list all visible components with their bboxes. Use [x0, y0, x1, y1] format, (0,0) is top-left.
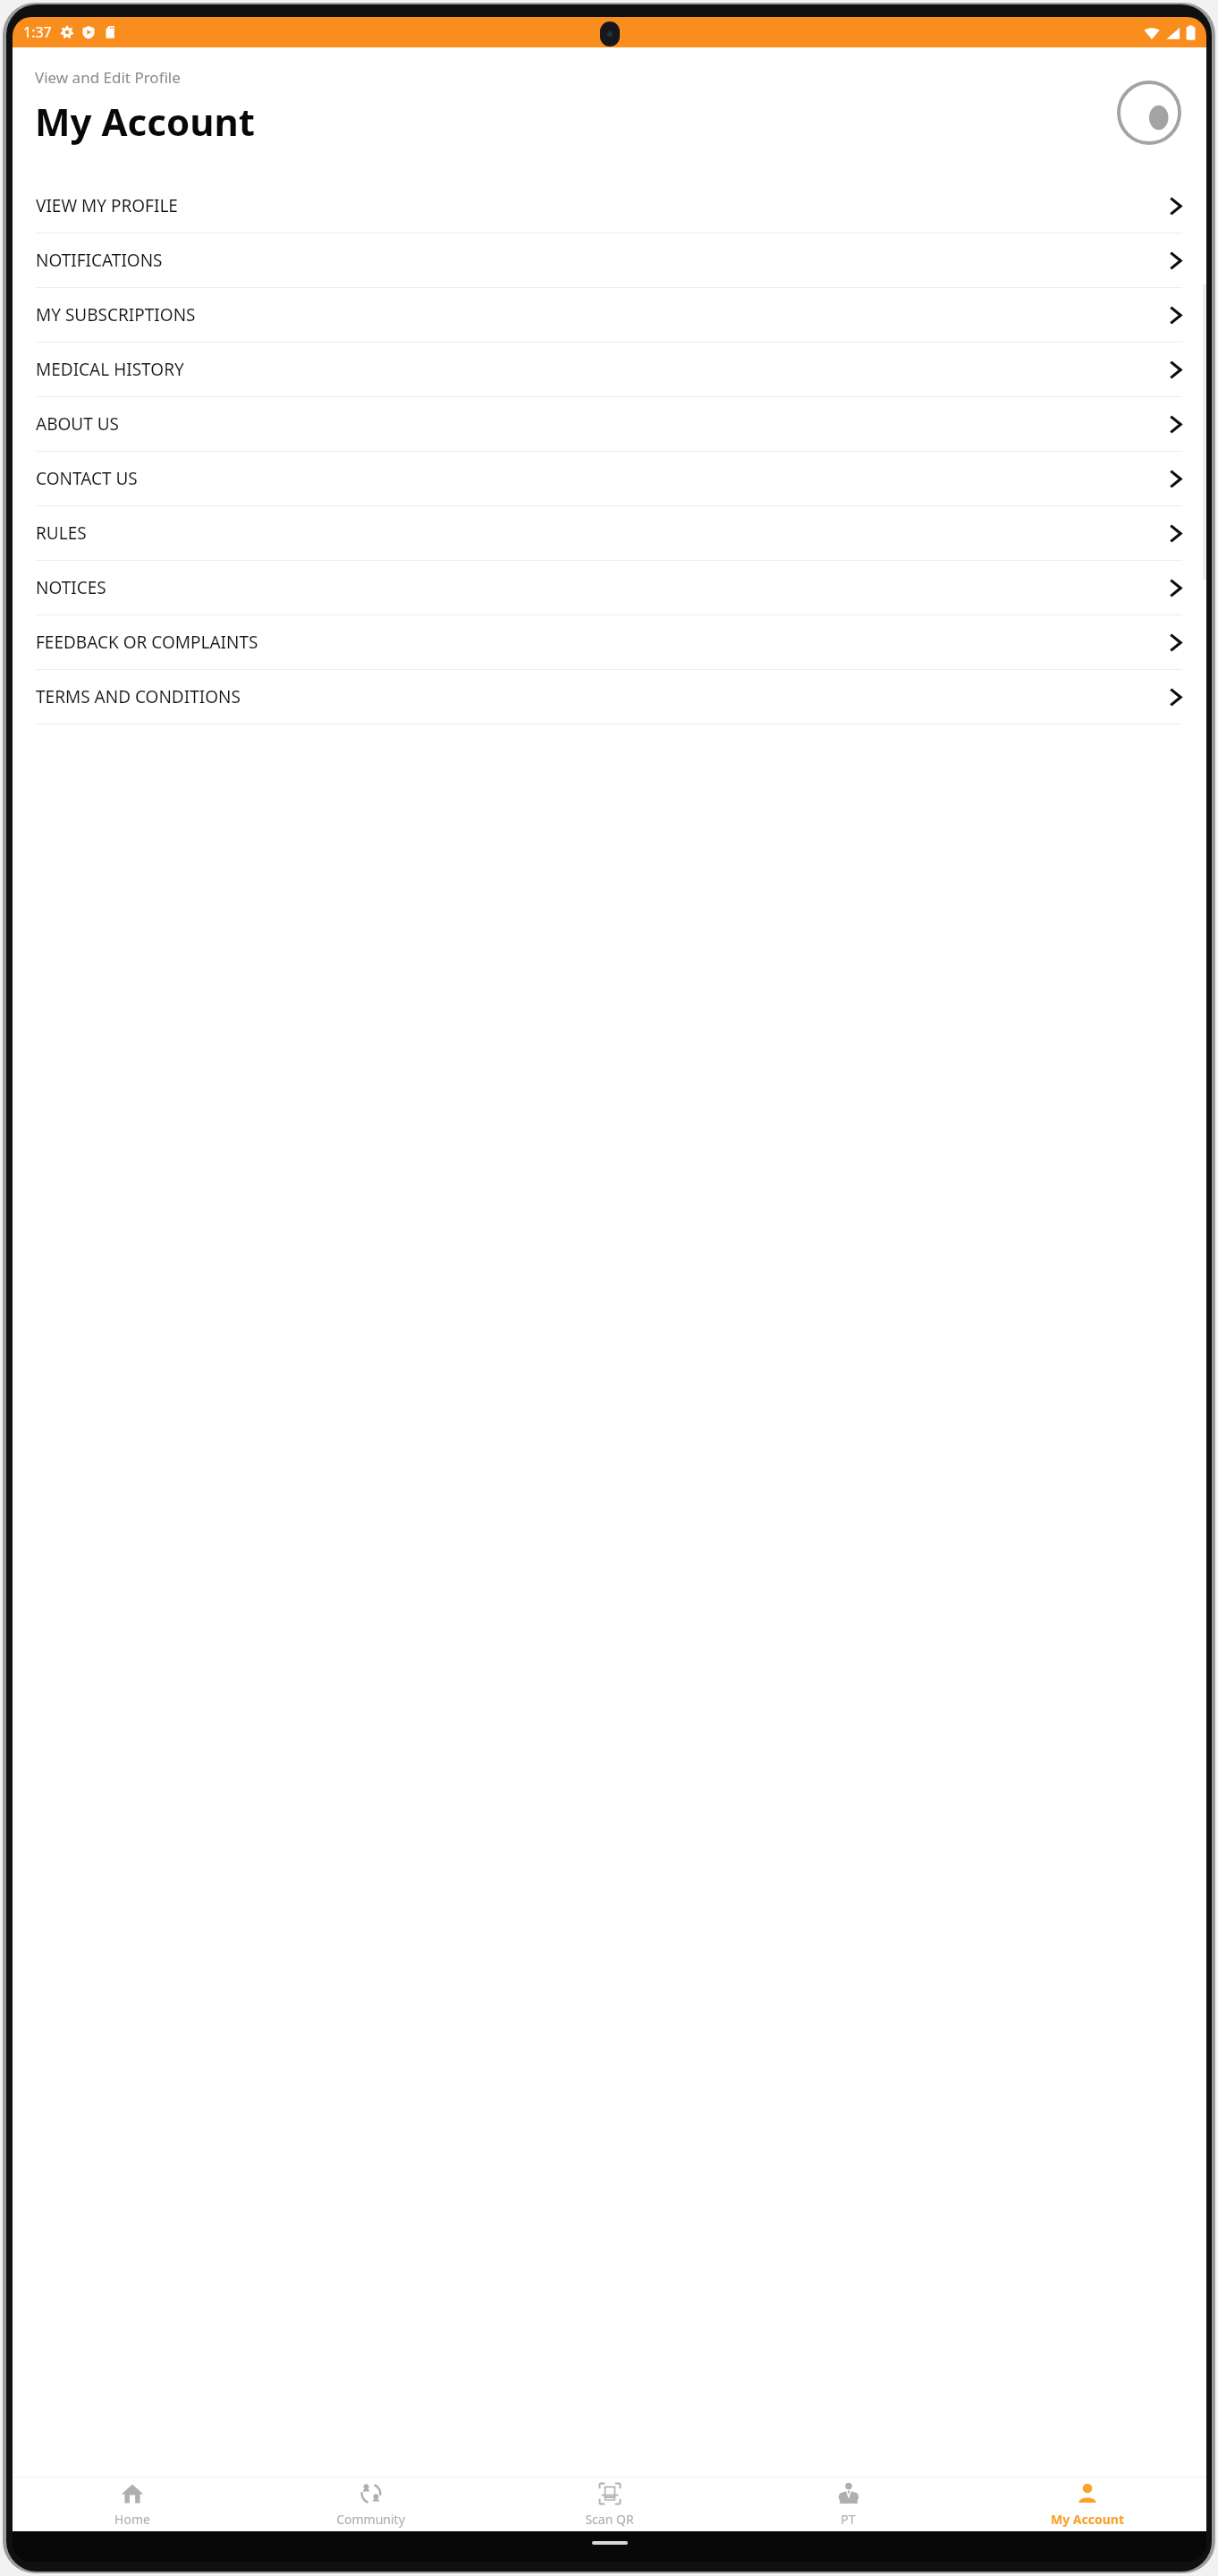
- staticText: Scan QR: [585, 2511, 634, 2528]
- button[interactable]: Scan QR: [490, 2478, 729, 2531]
- button[interactable]: NOTICES: [13, 561, 1206, 615]
- staticText: Community: [336, 2511, 405, 2528]
- button[interactable]: FEEDBACK OR COMPLAINTS: [13, 615, 1206, 670]
- button[interactable]: MY SUBSCRIPTIONS: [13, 288, 1206, 343]
- button[interactable]: CONTACT US: [13, 452, 1206, 506]
- button[interactable]: PT: [729, 2478, 968, 2531]
- button[interactable]: Profile photo: [1116, 80, 1182, 146]
- button[interactable]: Home: [13, 2478, 251, 2531]
- staticText: My Account: [1051, 2511, 1124, 2528]
- staticText: TERMS AND CONDITIONS: [36, 685, 241, 708]
- button[interactable]: My Account: [968, 2478, 1206, 2531]
- staticText: MEDICAL HISTORY: [36, 358, 184, 381]
- staticText: VIEW MY PROFILE: [36, 194, 178, 217]
- staticText: NOTIFICATIONS: [36, 249, 163, 272]
- staticText: FEEDBACK OR COMPLAINTS: [36, 631, 258, 654]
- staticText: CONTACT US: [36, 467, 138, 490]
- button[interactable]: NOTIFICATIONS: [13, 233, 1206, 288]
- staticText: NOTICES: [36, 576, 106, 599]
- staticText: View and Edit Profile: [35, 67, 181, 88]
- button[interactable]: RULES: [13, 506, 1206, 561]
- staticText: Home: [114, 2511, 150, 2528]
- staticText: RULES: [36, 521, 87, 545]
- staticText: My Account: [35, 96, 255, 147]
- button[interactable]: MEDICAL HISTORY: [13, 343, 1206, 397]
- button[interactable]: Community: [251, 2478, 490, 2531]
- button[interactable]: ABOUT US: [13, 397, 1206, 452]
- button[interactable]: TERMS AND CONDITIONS: [13, 670, 1206, 724]
- staticText: MY SUBSCRIPTIONS: [36, 303, 196, 326]
- staticText: PT: [841, 2511, 856, 2528]
- staticText: 1:37: [23, 22, 52, 42]
- staticText: ABOUT US: [36, 412, 120, 436]
- button[interactable]: VIEW MY PROFILE: [13, 179, 1206, 233]
